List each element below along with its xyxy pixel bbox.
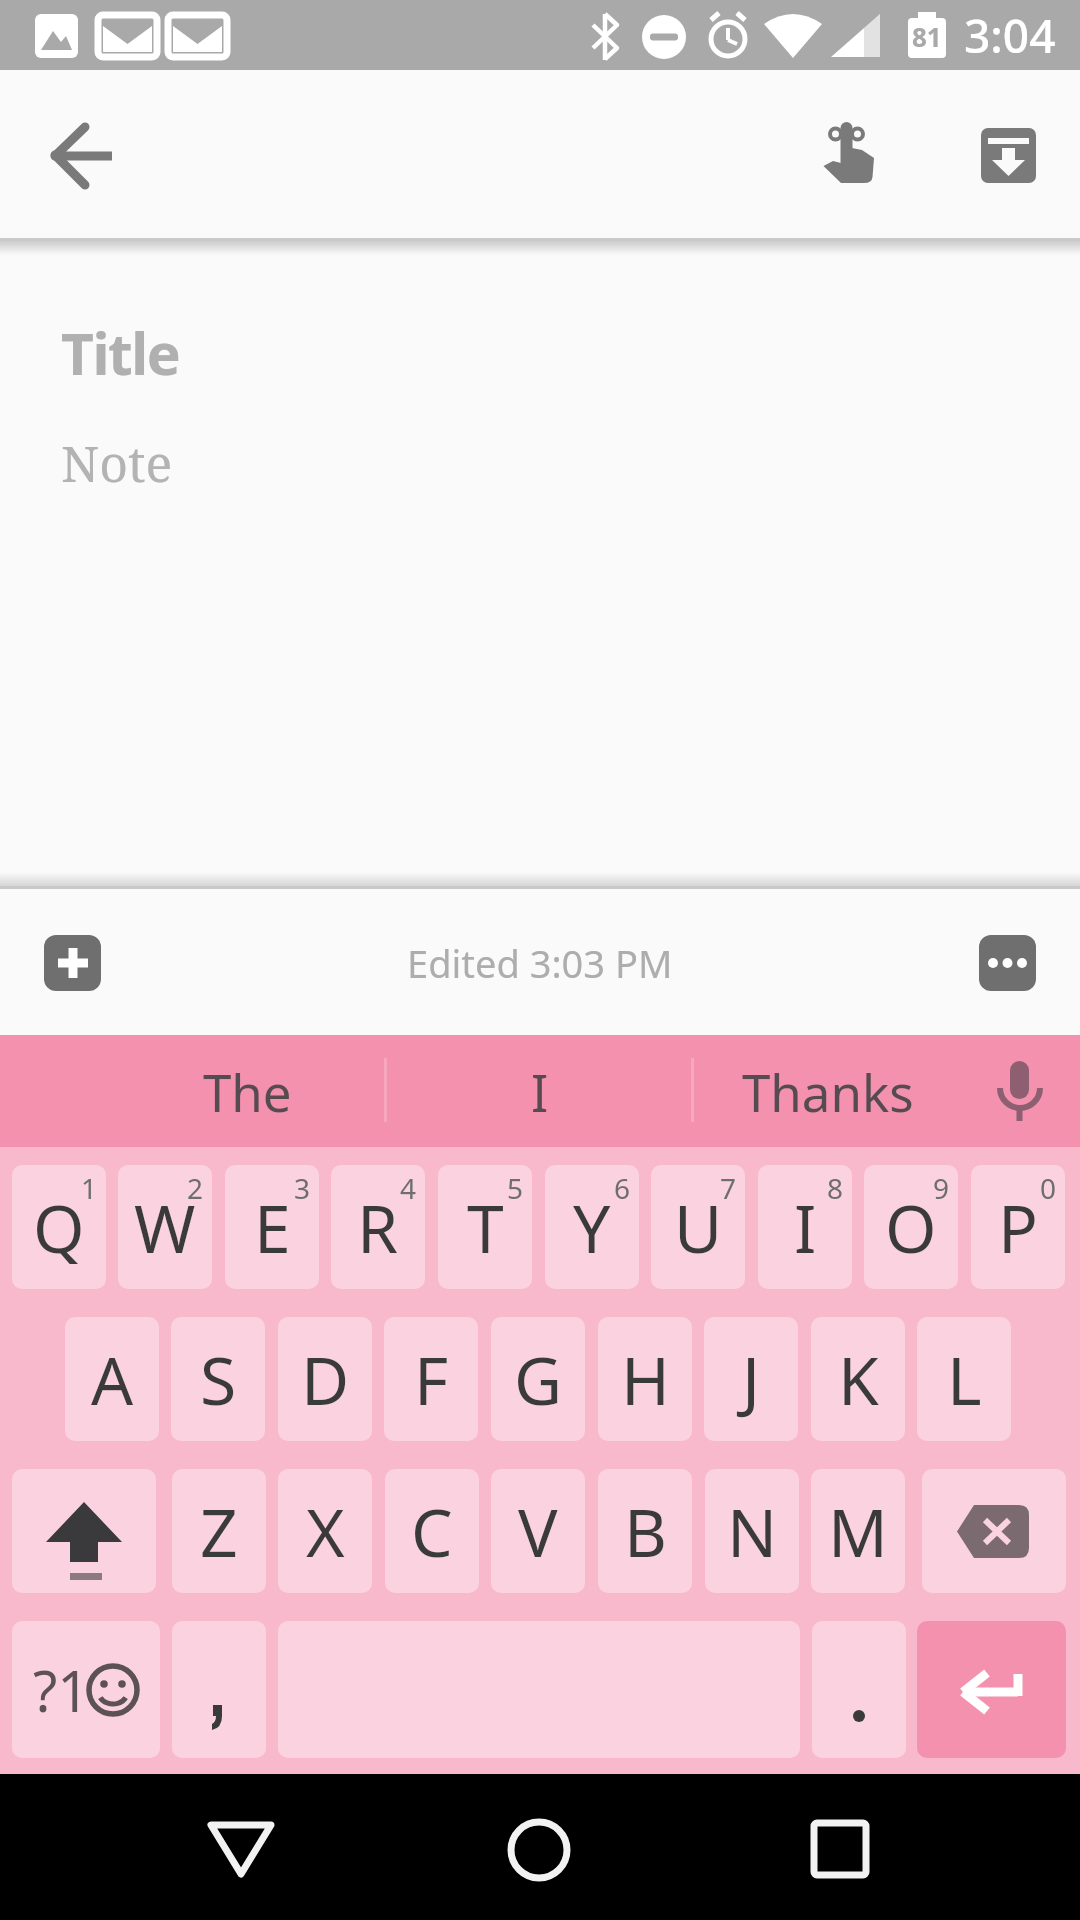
button[interactable] [917,1621,1066,1758]
staticText: 4 [400,1169,417,1207]
button[interactable] [800,108,896,204]
button[interactable] [44,935,101,991]
button[interactable]: T [438,1165,532,1289]
button[interactable]: S [171,1317,265,1441]
staticText: Note [61,429,173,497]
button[interactable] [780,1789,900,1909]
staticText: O [885,1182,937,1272]
staticText: I [531,1057,549,1126]
button[interactable]: N [705,1469,799,1593]
button[interactable]: E [225,1165,319,1289]
staticText: T [467,1182,504,1272]
button[interactable]: B [598,1469,692,1593]
staticText: The [203,1057,292,1126]
button[interactable]: C [385,1469,479,1593]
button[interactable]: P [971,1165,1065,1289]
staticText: 7 [720,1169,737,1207]
button[interactable] [12,1621,160,1758]
staticText: 6 [614,1169,631,1207]
button[interactable] [12,1469,156,1593]
staticText: V [518,1486,558,1576]
staticText: F [414,1334,449,1424]
button[interactable]: O [864,1165,958,1289]
button[interactable] [922,1469,1066,1593]
staticText: P [998,1182,1038,1272]
button[interactable]: J [704,1317,798,1441]
staticText: C [411,1486,453,1576]
button[interactable] [172,1621,266,1758]
button[interactable] [965,108,1061,204]
staticText: R [357,1182,399,1272]
staticText: Edited 3:03 PM [407,937,673,989]
button[interactable] [181,1789,301,1909]
button[interactable]: Thanks [678,1035,978,1147]
button[interactable] [979,935,1036,991]
staticText: 3 [294,1169,311,1207]
staticText: Q [33,1182,85,1272]
staticText: M [828,1486,888,1576]
staticText: N [727,1486,778,1576]
button[interactable]: M [811,1469,905,1593]
button[interactable]: Q [12,1165,106,1289]
button[interactable] [479,1789,599,1909]
staticText: G [514,1334,563,1424]
staticText: B [624,1486,667,1576]
button[interactable]: G [491,1317,585,1441]
staticText: K [838,1334,879,1424]
staticText: 5 [507,1169,524,1207]
button[interactable]: Title [61,313,561,393]
staticText: J [742,1334,761,1424]
button[interactable] [40,113,130,203]
staticText: W [134,1182,196,1272]
button[interactable]: V [491,1469,585,1593]
button[interactable]: A [65,1317,159,1441]
button[interactable]: F [384,1317,478,1441]
staticText: U [674,1182,723,1272]
button[interactable] [812,1621,906,1758]
button[interactable]: Z [172,1469,266,1593]
button[interactable]: K [811,1317,905,1441]
button[interactable]: Y [545,1165,639,1289]
button[interactable]: I [758,1165,852,1289]
button[interactable]: W [118,1165,212,1289]
staticText: 3:04 [964,4,1056,67]
staticText: Thanks [742,1057,914,1126]
staticText: I [794,1182,817,1272]
staticText: Y [573,1182,611,1272]
staticText: S [200,1334,237,1424]
staticText: D [301,1334,350,1424]
button[interactable]: The [97,1035,397,1147]
staticText: L [947,1334,982,1424]
button[interactable] [980,1040,1060,1142]
staticText: ?1 [33,1652,90,1728]
button[interactable]: I [390,1035,690,1147]
staticText: A [91,1334,134,1424]
button[interactable]: R [331,1165,425,1289]
staticText: 9 [933,1169,950,1207]
button[interactable]: Note [61,425,561,500]
button[interactable]: L [917,1317,1011,1441]
button[interactable]: X [278,1469,372,1593]
staticText: 2 [187,1169,204,1207]
staticText: 8 [827,1169,844,1207]
staticText: 0 [1040,1169,1057,1207]
staticText: H [621,1334,670,1424]
staticText: 1 [81,1169,98,1207]
staticText: X [306,1486,345,1576]
button[interactable]: U [651,1165,745,1289]
staticText: Title [61,314,180,392]
staticText: 81 [912,19,942,54]
staticText: E [254,1182,291,1272]
staticText: Z [200,1486,238,1576]
button[interactable]: D [278,1317,372,1441]
button[interactable]: H [598,1317,692,1441]
